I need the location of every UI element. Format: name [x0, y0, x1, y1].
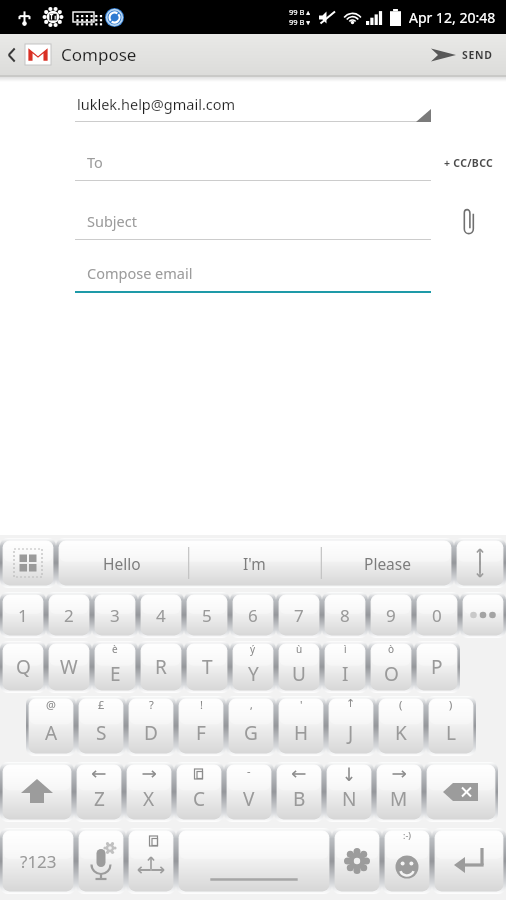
staticText: :-) [403, 829, 412, 841]
button[interactable]: 3 [92, 592, 138, 638]
button[interactable]: Expand suggestions [454, 538, 506, 588]
staticText: Q [16, 654, 31, 680]
staticText: SEND [462, 48, 493, 62]
staticText: E [110, 661, 121, 687]
staticText: ↑ [346, 697, 356, 710]
button[interactable]: More symbols [460, 592, 506, 638]
staticText: X [143, 786, 155, 812]
button[interactable]: 1 [0, 592, 46, 638]
staticText: J [348, 720, 354, 746]
button[interactable]: Settings [332, 828, 382, 894]
button[interactable]: Voice input [76, 828, 126, 894]
staticText: B [293, 786, 306, 812]
button[interactable]: ↑ [326, 696, 376, 756]
staticText: V [243, 786, 255, 812]
button[interactable]: 9 [368, 592, 414, 638]
button[interactable]: Attach file [431, 204, 506, 240]
button[interactable]: Please [321, 538, 454, 588]
button[interactable]: @ [26, 696, 76, 756]
button[interactable]: 6 [230, 592, 276, 638]
staticText: L [446, 720, 456, 746]
button[interactable]: 7 [276, 592, 322, 638]
button[interactable]: Cursor control [126, 828, 176, 894]
button[interactable]: ù [276, 641, 322, 693]
staticText: ?123 [20, 850, 57, 873]
button[interactable]: 5 [184, 592, 230, 638]
button[interactable]: ( [376, 696, 426, 756]
button[interactable]: è [92, 641, 138, 693]
button[interactable]: ?123 [0, 828, 76, 894]
button[interactable]: ò [368, 641, 414, 693]
staticText: Apr 12, 20:48 [409, 8, 496, 27]
staticText: To [87, 152, 103, 172]
staticText: ù [296, 642, 303, 656]
button[interactable]: Emoji [382, 828, 432, 894]
button[interactable]: luklek.help@gmail.com [75, 94, 431, 122]
button[interactable]: ! [176, 696, 226, 756]
button[interactable]: R [138, 641, 184, 693]
button[interactable]: 2 [46, 592, 92, 638]
button[interactable]: Compose [0, 34, 145, 75]
staticText: G [244, 720, 258, 746]
staticText: P [431, 654, 443, 680]
button[interactable]: ' [276, 696, 326, 756]
staticText: Compose [61, 43, 137, 66]
staticText: ò [388, 642, 395, 656]
staticText: 7 [294, 604, 304, 627]
staticText: ? [149, 697, 154, 712]
button[interactable]: ì [322, 641, 368, 693]
button[interactable]: Keyboard layout [0, 538, 56, 588]
button[interactable]: Z [74, 762, 124, 822]
staticText: D [144, 720, 158, 746]
button[interactable]: - [224, 762, 274, 822]
button[interactable]: N [324, 762, 374, 822]
staticText: M [390, 786, 408, 812]
staticText: F [196, 720, 206, 746]
button[interactable]: 4 [138, 592, 184, 638]
staticText: R [155, 654, 167, 680]
button[interactable]: ) [426, 696, 476, 756]
staticText: @ [46, 697, 56, 712]
staticText: ' [300, 697, 303, 712]
button[interactable]: + CC/BCC [431, 145, 506, 181]
button[interactable]: Shift [0, 762, 74, 822]
button[interactable]: Space [176, 828, 332, 894]
staticText: 8 [340, 604, 350, 627]
button[interactable]: To [75, 152, 431, 181]
staticText: 9 [386, 604, 396, 627]
button[interactable]: M [374, 762, 424, 822]
button[interactable]: Subject [75, 211, 431, 240]
staticText: Z [94, 786, 105, 812]
button[interactable]: 0 [414, 592, 460, 638]
button[interactable]: Enter [432, 828, 506, 894]
button[interactable]: Hello [56, 538, 188, 588]
button[interactable]: ý [230, 641, 276, 693]
button[interactable]: Compose email [75, 263, 431, 293]
staticText: C [193, 786, 206, 812]
button[interactable]: ? [126, 696, 176, 756]
staticText: ) [449, 697, 453, 712]
staticText: Please [364, 553, 411, 574]
button[interactable]: C [174, 762, 224, 822]
button[interactable]: 8 [322, 592, 368, 638]
button[interactable]: ‚ [226, 696, 276, 756]
button[interactable]: T [184, 641, 230, 693]
staticText: £ [98, 697, 105, 712]
button[interactable]: SEND [421, 34, 506, 75]
staticText: ( [399, 697, 403, 712]
button[interactable]: I'm [188, 538, 321, 588]
staticText: 0 [432, 604, 442, 627]
button[interactable]: X [124, 762, 174, 822]
button[interactable]: B [274, 762, 324, 822]
button[interactable]: W [46, 641, 92, 693]
button[interactable]: Q [0, 641, 46, 693]
staticText: 99 B ▴ [289, 7, 311, 17]
staticText: I [342, 661, 349, 687]
button[interactable]: P [414, 641, 460, 693]
staticText: luklek.help@gmail.com [77, 94, 236, 114]
button[interactable]: £ [76, 696, 126, 756]
staticText: 5 [202, 604, 212, 627]
staticText: O [384, 661, 399, 687]
button[interactable]: Backspace [424, 762, 498, 822]
staticText: T [202, 654, 213, 680]
